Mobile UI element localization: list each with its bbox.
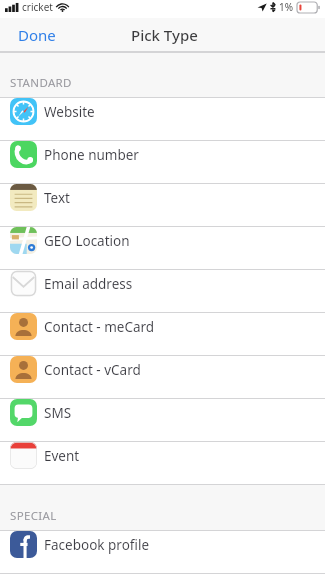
staticText: Facebook profile bbox=[44, 536, 150, 554]
button[interactable]: Website bbox=[0, 98, 325, 141]
staticText: Phone number bbox=[44, 146, 139, 164]
staticText: Website bbox=[44, 103, 95, 121]
staticText: Email address bbox=[44, 275, 133, 293]
button[interactable]: Contact - meCard bbox=[0, 313, 325, 356]
staticText: Text bbox=[44, 189, 70, 207]
staticText: SMS bbox=[44, 404, 72, 422]
button[interactable]: GEO Location bbox=[0, 227, 325, 270]
button[interactable]: Text bbox=[0, 184, 325, 227]
button[interactable]: Facebook profile bbox=[0, 531, 325, 574]
staticText: cricket bbox=[22, 0, 53, 14]
staticText: SPECIAL bbox=[10, 508, 57, 524]
staticText: 1% bbox=[279, 0, 294, 14]
staticText: Contact - meCard bbox=[44, 318, 155, 336]
button[interactable]: Contact - vCard bbox=[0, 356, 325, 399]
staticText: Event bbox=[44, 447, 80, 465]
button[interactable]: Event bbox=[0, 442, 325, 485]
button[interactable]: Done bbox=[14, 21, 60, 49]
staticText: GEO Location bbox=[44, 232, 130, 250]
staticText: Done bbox=[18, 25, 56, 45]
button[interactable]: Email address bbox=[0, 270, 325, 313]
staticText: Pick Type bbox=[131, 25, 198, 45]
button[interactable]: Phone number bbox=[0, 141, 325, 184]
button[interactable]: SMS bbox=[0, 399, 325, 442]
staticText: Contact - vCard bbox=[44, 361, 141, 379]
staticText: STANDARD bbox=[10, 75, 72, 91]
